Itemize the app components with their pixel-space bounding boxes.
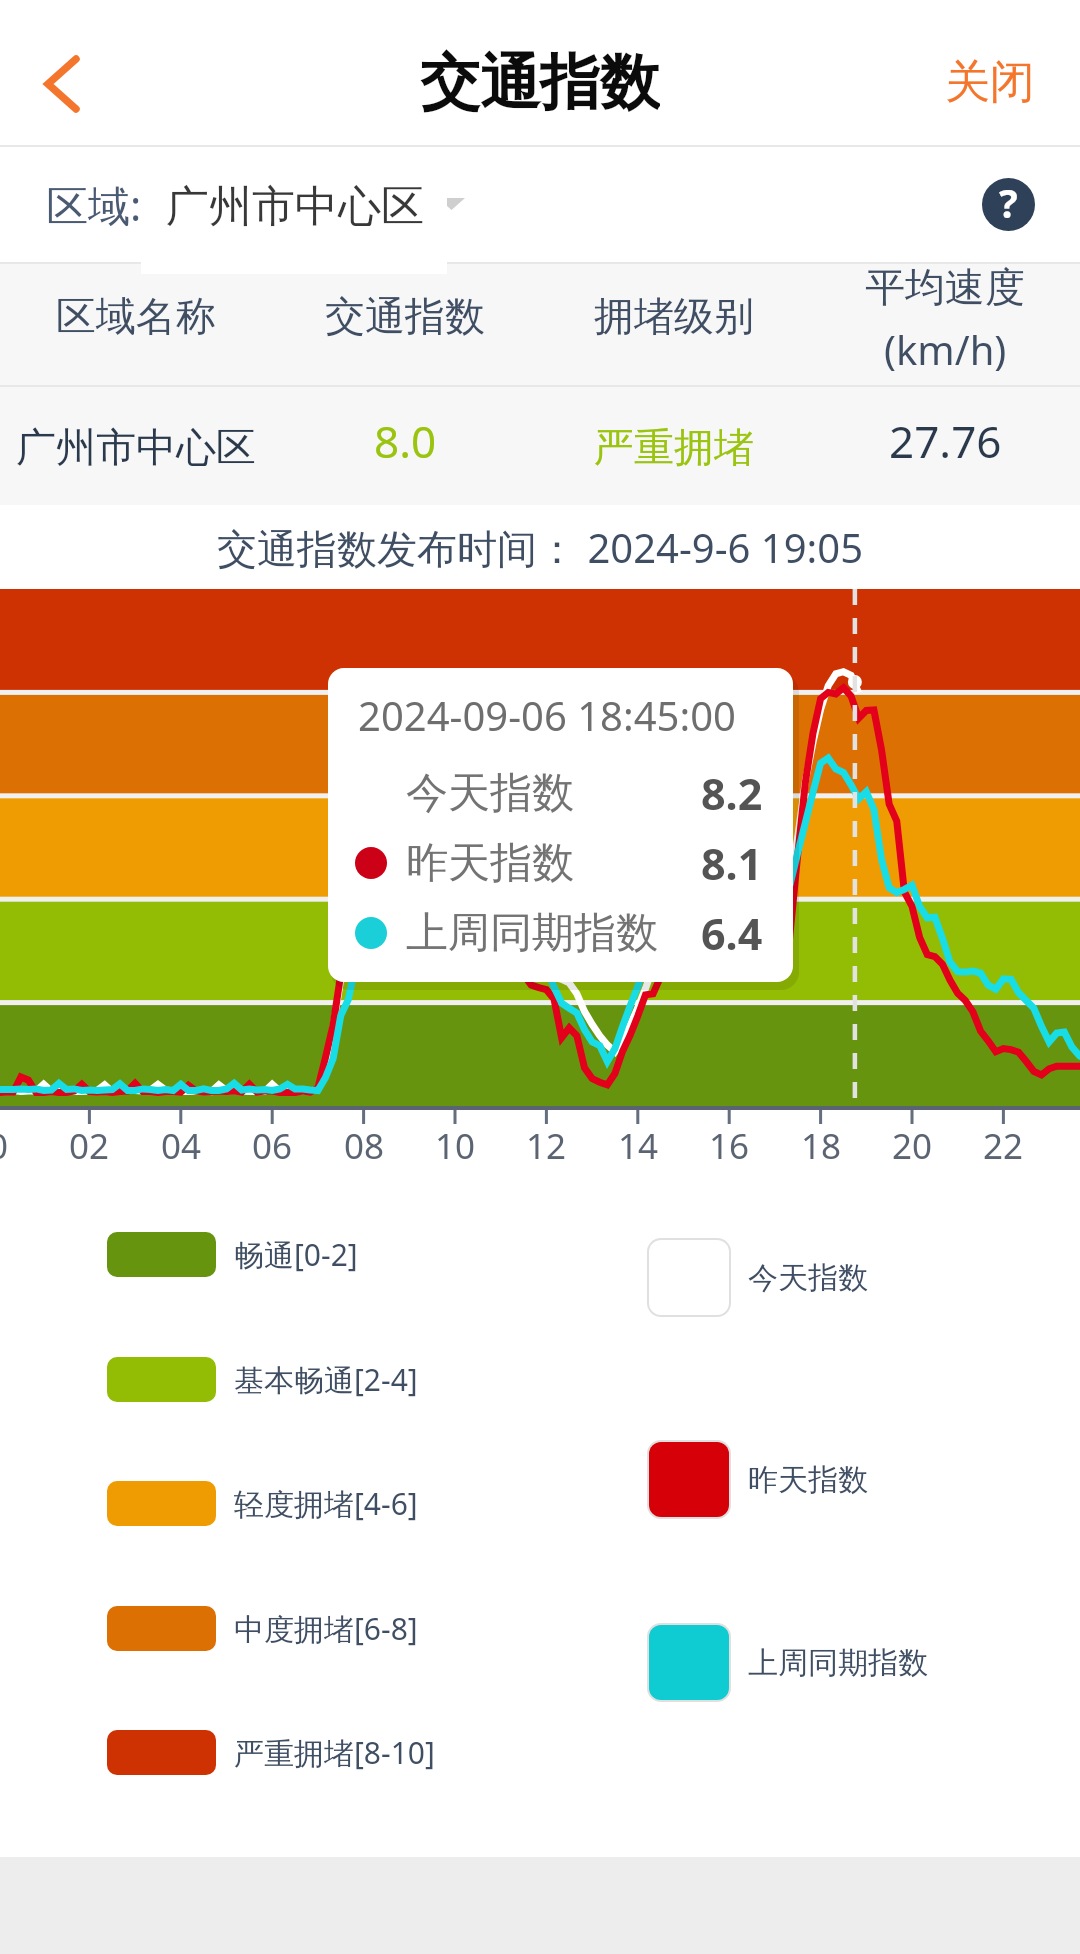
staticText: 畅通[0-2]	[234, 1234, 358, 1275]
button[interactable]: Help	[974, 170, 1042, 238]
staticText: 8.1	[701, 834, 763, 893]
staticText: 10	[415, 1122, 495, 1170]
staticText: 轻度拥堵[4-6]	[234, 1483, 418, 1524]
button[interactable]: 广州市中心区	[141, 149, 447, 274]
staticText: 8.0	[374, 411, 437, 465]
staticText: 交通指数	[325, 291, 485, 341]
staticText: 12	[506, 1122, 586, 1170]
staticText: 14	[598, 1122, 678, 1170]
staticText: 拥堵级别	[594, 291, 754, 341]
staticText: 04	[141, 1122, 221, 1170]
staticText: 2024-09-06 18:45:00	[358, 688, 736, 742]
button[interactable]: 中度拥堵[6-8]	[107, 1605, 418, 1651]
staticText: 6.4	[701, 904, 763, 963]
staticText: 20	[872, 1122, 952, 1170]
staticText: 区域名称	[56, 291, 216, 341]
button[interactable]: 畅通[0-2]	[107, 1231, 358, 1277]
staticText: 平均速度	[865, 262, 1025, 312]
staticText: 上周同期指数	[748, 1644, 928, 1682]
button[interactable]: 今天指数	[647, 1238, 868, 1317]
staticText: 区域:	[46, 176, 142, 233]
staticText: 交通指数	[420, 45, 660, 117]
button[interactable]: 昨天指数	[647, 1440, 868, 1519]
staticText: 8.2	[701, 764, 763, 823]
staticText: 今天指数	[748, 1259, 868, 1297]
staticText: 交通指数发布时间： 2024-9-6 19:05	[217, 520, 864, 575]
staticText: 关闭	[945, 54, 1035, 111]
staticText: 27.76	[889, 411, 1002, 465]
staticText: 昨天指数	[748, 1461, 868, 1499]
staticText: 16	[689, 1122, 769, 1170]
staticText: 0	[0, 1122, 38, 1170]
button[interactable]: Back	[7, 29, 117, 139]
staticText: (km/h)	[884, 322, 1007, 376]
staticText: 上周同期指数	[406, 907, 658, 960]
staticText: 昨天指数	[406, 837, 574, 890]
staticText: 广州市中心区	[16, 422, 256, 472]
staticText: 中度拥堵[6-8]	[234, 1608, 418, 1649]
staticText: 基本畅通[2-4]	[234, 1359, 418, 1400]
staticText: 22	[963, 1122, 1043, 1170]
button[interactable]: 严重拥堵[8-10]	[107, 1729, 435, 1775]
staticText: ?	[999, 176, 1018, 229]
staticText: 02	[49, 1122, 129, 1170]
button[interactable]: 轻度拥堵[4-6]	[107, 1480, 418, 1526]
staticText: 广州市中心区	[166, 180, 424, 234]
button[interactable]: 基本畅通[2-4]	[107, 1356, 418, 1402]
staticText: 06	[232, 1122, 312, 1170]
staticText: 严重拥堵	[594, 422, 754, 472]
staticText: 08	[324, 1122, 404, 1170]
button[interactable]: 上周同期指数	[647, 1623, 928, 1702]
staticText: 18	[781, 1122, 861, 1170]
button[interactable]: 关闭	[930, 52, 1050, 112]
staticText: 今天指数	[406, 767, 574, 820]
staticText: 严重拥堵[8-10]	[234, 1732, 435, 1773]
button[interactable]: 广州市中心区	[0, 387, 1080, 505]
